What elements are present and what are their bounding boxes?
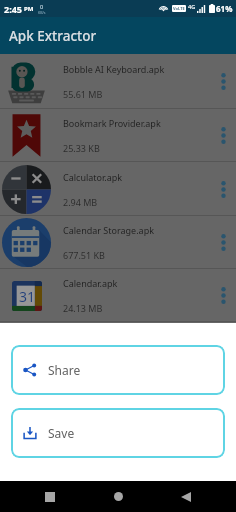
button[interactable]: Calendar Storage.apk bbox=[0, 216, 236, 269]
button[interactable]: More options bbox=[210, 54, 236, 109]
staticText: 677.51 KB bbox=[63, 249, 105, 261]
button[interactable]: More options bbox=[210, 269, 236, 322]
button[interactable]: More options bbox=[210, 216, 236, 269]
staticText: Save bbox=[48, 425, 75, 441]
button[interactable]: Home bbox=[100, 481, 136, 512]
staticText: VoLTE bbox=[173, 6, 185, 11]
staticText: Calendar Storage.apk bbox=[63, 224, 154, 236]
button[interactable]: Save bbox=[11, 408, 225, 458]
staticText: 2.94 MB bbox=[63, 196, 98, 208]
staticText: Calculator.apk bbox=[63, 171, 123, 183]
staticText: 2:45 bbox=[4, 3, 22, 15]
staticText: Share bbox=[48, 362, 81, 378]
staticText: 4G bbox=[188, 3, 196, 10]
staticText: 0 bbox=[40, 3, 44, 10]
staticText: Bookmark Provider.apk bbox=[63, 117, 161, 129]
button[interactable]: More options bbox=[210, 109, 236, 162]
button[interactable]: Bobble AI Keyboard.apk bbox=[0, 54, 236, 109]
staticText: Calendar.apk bbox=[63, 277, 118, 289]
staticText: 25.33 KB bbox=[63, 142, 100, 154]
button[interactable]: Calculator.apk bbox=[0, 162, 236, 216]
button[interactable]: Bookmark Provider.apk bbox=[0, 109, 236, 162]
staticText: Bobble AI Keyboard.apk bbox=[63, 63, 165, 75]
button[interactable]: Recents bbox=[32, 481, 68, 512]
staticText: 61% bbox=[216, 3, 233, 14]
button[interactable]: Share bbox=[11, 345, 225, 395]
staticText: PM bbox=[24, 5, 34, 13]
staticText: Apk Extractor bbox=[9, 27, 97, 45]
button[interactable]: 31 bbox=[0, 269, 236, 322]
button[interactable]: Back bbox=[168, 481, 204, 512]
staticText: 55.61 MB bbox=[63, 88, 103, 100]
button[interactable]: More options bbox=[210, 162, 236, 216]
staticText: KB/s bbox=[38, 10, 46, 15]
staticText: 24.13 MB bbox=[63, 302, 103, 314]
staticText: 31 bbox=[19, 287, 36, 306]
